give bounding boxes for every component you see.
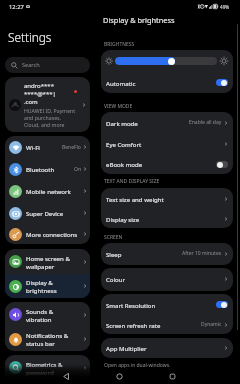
button[interactable]: Sounds & (5, 302, 90, 327)
button[interactable]: Search (5, 57, 90, 73)
staticText: Dynamic (201, 321, 222, 328)
button[interactable]: Home (93, 369, 146, 384)
staticText: Wi-Fi (26, 143, 40, 151)
staticText: Super Device (26, 209, 64, 217)
staticText: wallpaper (26, 262, 55, 270)
staticText: HUAWEI ID, Payment (24, 107, 76, 114)
staticText: BeneFlo (62, 144, 81, 151)
staticText: More connections (26, 230, 78, 238)
staticText: Enable all day (189, 119, 222, 126)
staticText: Automatic (106, 79, 136, 87)
staticText: Notifications & (26, 331, 69, 339)
button[interactable]: Display & (5, 274, 90, 298)
staticText: 12:27 (9, 3, 24, 11)
staticText: andro**** (24, 82, 54, 90)
button[interactable]: Wi-Fi (5, 136, 90, 158)
button[interactable]: Mobile network (5, 180, 90, 202)
staticText: Open apps in dual-windows. (104, 362, 171, 369)
button[interactable]: Eye Comfort (101, 133, 233, 154)
button[interactable]: Text size and weight (101, 188, 233, 209)
staticText: Bluetooth (26, 165, 55, 173)
staticText: Mobile network (26, 187, 71, 195)
staticText: Display & brightness (103, 15, 175, 25)
button[interactable]: Biometrics & (5, 355, 90, 380)
staticText: VIEW MODE (104, 103, 133, 110)
staticText: Home screen & (26, 254, 70, 262)
button[interactable]: Super Device (5, 202, 90, 224)
button[interactable]: Back (40, 369, 93, 384)
staticText: 49% (220, 4, 230, 10)
staticText: App Multiplier (106, 344, 147, 352)
button[interactable]: Notifications & (5, 327, 90, 351)
button[interactable]: Screen refresh rate (101, 315, 233, 334)
staticText: Settings (8, 29, 52, 45)
button[interactable]: Dark mode (101, 112, 233, 133)
staticText: Display & (26, 278, 53, 286)
button[interactable]: Recents (146, 369, 199, 384)
button[interactable]: Automatic (101, 72, 233, 93)
staticText: password (26, 368, 54, 376)
button[interactable]: More connections (5, 224, 90, 244)
staticText: brightness (26, 286, 57, 294)
button[interactable]: Colour (101, 268, 233, 289)
staticText: Search (22, 61, 40, 69)
button[interactable]: eBook mode (101, 154, 233, 174)
staticText: status bar (26, 339, 55, 347)
staticText: vibration (26, 315, 52, 323)
staticText: SCREEN (104, 234, 123, 241)
staticText: On (74, 166, 81, 173)
staticText: and purchases, (24, 114, 61, 121)
staticText: Dark mode (106, 119, 138, 127)
staticText: Sleep (106, 250, 122, 258)
staticText: Colour (106, 275, 126, 283)
staticText: TEXT AND DISPLAY SIZE (104, 178, 160, 185)
button[interactable]: andro**** (5, 77, 90, 132)
button[interactable]: App Multiplier (101, 338, 233, 358)
staticText: Display size (106, 215, 140, 223)
staticText: Sounds & (26, 307, 54, 315)
staticText: After 10 minutes (182, 250, 222, 257)
staticText: Eye Comfort (106, 140, 142, 148)
button[interactable]: Home screen & (5, 249, 90, 274)
staticText: Smart Resolution (106, 301, 156, 309)
button[interactable]: Bluetooth (5, 158, 90, 180)
staticText: Text size and weight (106, 195, 164, 203)
button[interactable]: Smart Resolution (101, 294, 233, 315)
staticText: BRIGHTNESS (104, 41, 135, 48)
staticText: Biometrics & (26, 360, 63, 368)
button[interactable]: Display size (101, 209, 233, 228)
staticText: eBook mode (106, 160, 143, 168)
staticText: Screen refresh rate (106, 321, 161, 329)
staticText: .com (24, 98, 38, 106)
staticText: ****@***| (24, 90, 56, 98)
button[interactable]: Sleep (101, 243, 233, 264)
staticText: Cloud, and more (24, 121, 65, 128)
